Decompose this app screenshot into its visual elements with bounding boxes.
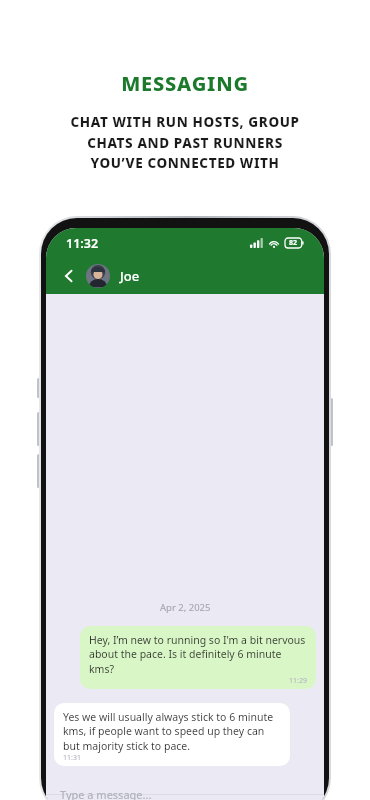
staticText: 82 xyxy=(289,238,298,248)
button[interactable]: Back xyxy=(56,263,82,289)
staticText: MESSAGING xyxy=(121,70,249,97)
button[interactable]: Yes we will usually always stick to 6 mi… xyxy=(54,703,290,766)
staticText: 11:29 xyxy=(289,676,307,686)
staticText: 11:32 xyxy=(66,235,99,252)
staticText: Hey, I’m new to running so I'm a bit ner… xyxy=(89,633,307,676)
staticText: Joe xyxy=(120,267,140,285)
staticText: Yes we will usually always stick to 6 mi… xyxy=(63,710,281,753)
staticText: 11:31 xyxy=(63,753,81,763)
button[interactable]: Type a message... xyxy=(46,774,324,800)
button[interactable]: Joe profile photo xyxy=(86,264,110,288)
staticText: Type a message... xyxy=(60,787,152,800)
staticText: CHAT WITH RUN HOSTS, GROUP CHATS AND PAS… xyxy=(70,113,300,172)
staticText: Apr 2, 2025 xyxy=(160,601,211,614)
button[interactable]: Hey, I’m new to running so I'm a bit ner… xyxy=(80,626,316,689)
